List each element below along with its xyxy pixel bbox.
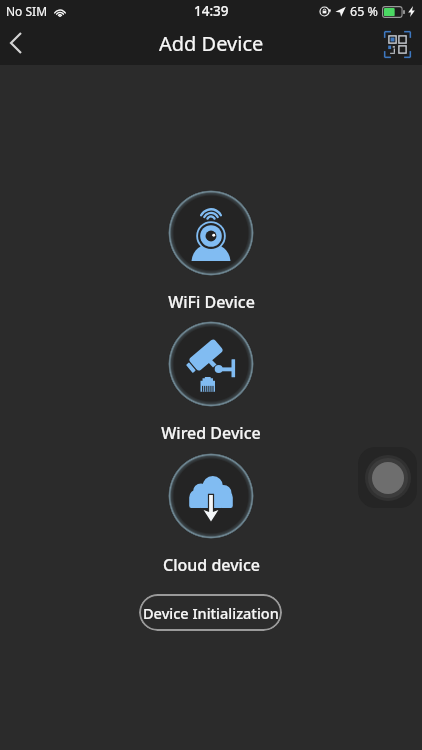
staticText: Add Device — [159, 30, 264, 57]
button[interactable] — [168, 453, 254, 539]
staticText: Device Initialization — [143, 603, 279, 623]
staticText: No SIM — [6, 3, 48, 19]
staticText: 65 % — [350, 3, 378, 20]
button[interactable]: Back — [0, 22, 42, 65]
button[interactable] — [168, 190, 254, 276]
button[interactable]: Device Initialization — [139, 594, 282, 631]
staticText: Cloud device — [163, 554, 260, 576]
staticText: WiFi Device — [168, 291, 255, 313]
button[interactable]: Assistive touch — [358, 447, 417, 508]
staticText: 14:39 — [194, 2, 229, 20]
button[interactable]: Scan QR code — [379, 26, 415, 62]
button[interactable] — [168, 321, 254, 407]
staticText: Wired Device — [161, 422, 261, 444]
